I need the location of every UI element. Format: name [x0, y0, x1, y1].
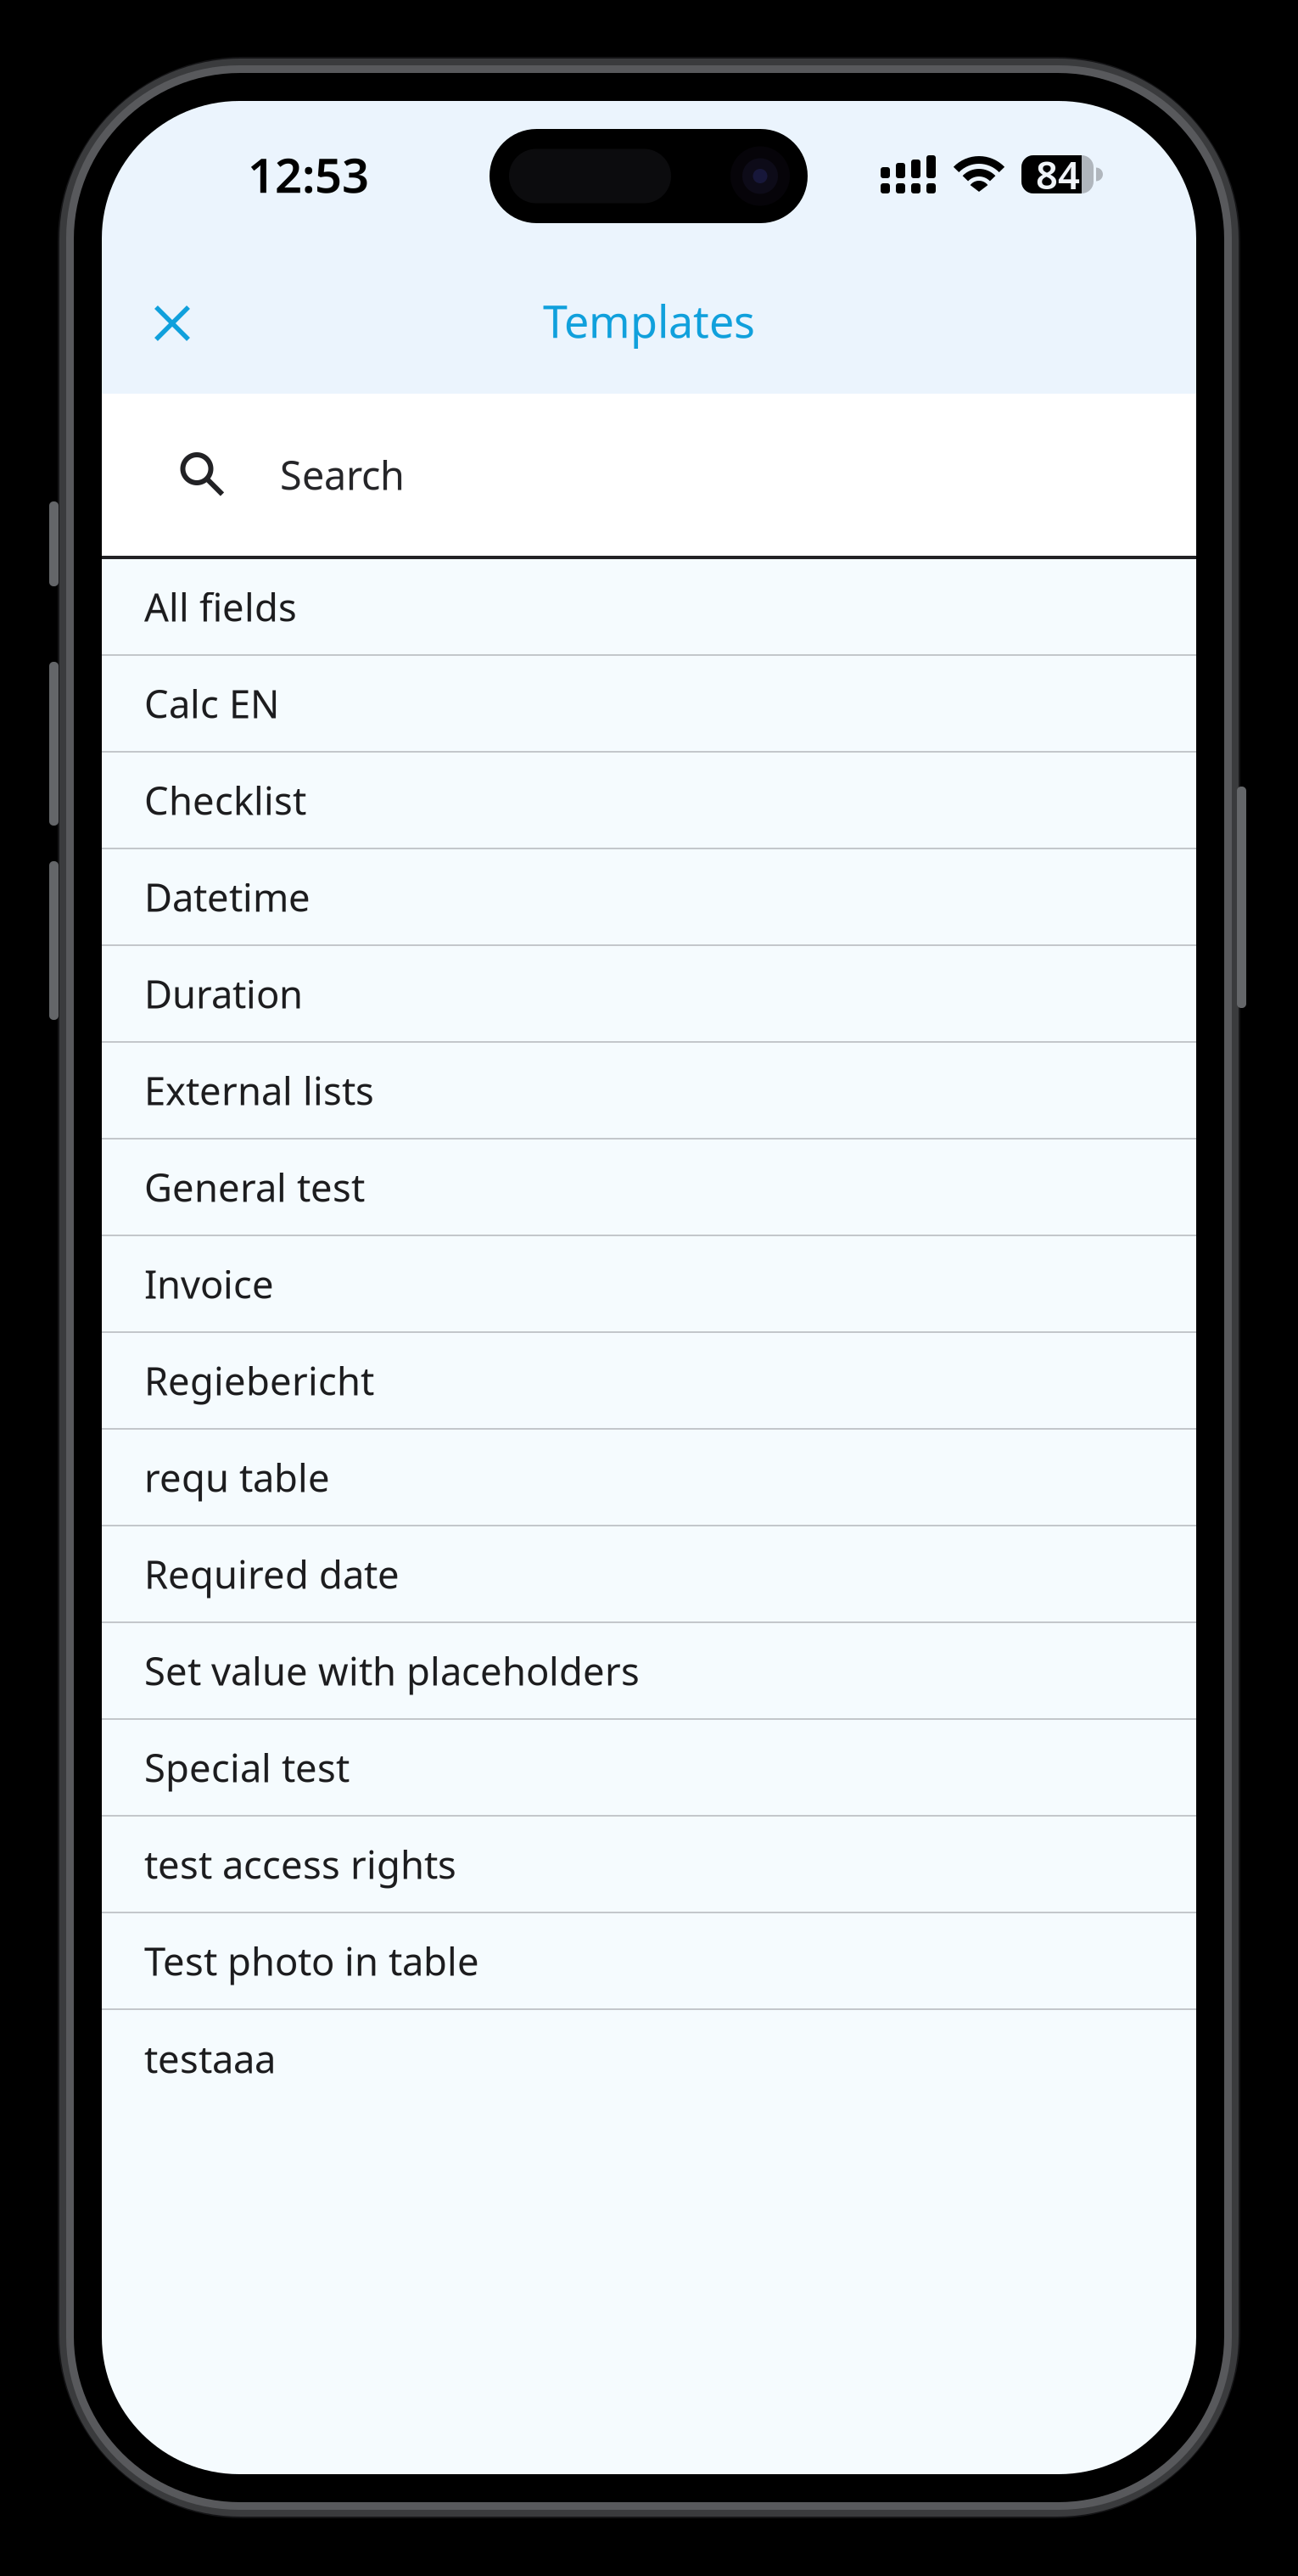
staticText: Duration	[144, 968, 303, 1019]
staticText: requ table	[144, 1452, 330, 1503]
staticText: All fields	[144, 581, 297, 632]
button[interactable]: Duration	[102, 946, 1196, 1043]
staticText: Required date	[144, 1548, 400, 1599]
button[interactable]: requ table	[102, 1430, 1196, 1526]
staticText: Search	[280, 448, 405, 501]
button[interactable]: Required date	[102, 1526, 1196, 1623]
staticText: Checklist	[144, 775, 306, 826]
button[interactable]: All fields	[102, 559, 1196, 656]
button[interactable]: General test	[102, 1140, 1196, 1236]
button[interactable]: Set value with placeholders	[102, 1623, 1196, 1720]
staticText: Calc EN	[144, 678, 279, 729]
button[interactable]: Special test	[102, 1720, 1196, 1817]
button[interactable]: Close	[102, 282, 233, 360]
staticText: General test	[144, 1161, 365, 1213]
button[interactable]: External lists	[102, 1043, 1196, 1140]
staticText: 12:53	[248, 143, 369, 206]
staticText: testaaa	[144, 2033, 276, 2084]
button[interactable]: Test photo in table	[102, 1913, 1196, 2010]
staticText: Regiebericht	[144, 1355, 374, 1406]
staticText: Invoice	[144, 1258, 274, 1309]
staticText: External lists	[144, 1065, 374, 1116]
button[interactable]: test access rights	[102, 1817, 1196, 1913]
button[interactable]: Datetime	[102, 849, 1196, 946]
staticText: Datetime	[144, 871, 311, 922]
button[interactable]: Search	[102, 394, 1196, 556]
button[interactable]: Invoice	[102, 1236, 1196, 1333]
button[interactable]: testaaa	[102, 2010, 1196, 2107]
button[interactable]: Checklist	[102, 753, 1196, 849]
staticText: Templates	[543, 291, 755, 350]
staticText: 84	[1036, 149, 1080, 200]
staticText: Set value with placeholders	[144, 1645, 640, 1696]
staticText: Test photo in table	[144, 1935, 479, 1986]
staticText: Special test	[144, 1742, 350, 1793]
button[interactable]: Calc EN	[102, 656, 1196, 753]
staticText: test access rights	[144, 1839, 456, 1890]
button[interactable]: Regiebericht	[102, 1333, 1196, 1430]
